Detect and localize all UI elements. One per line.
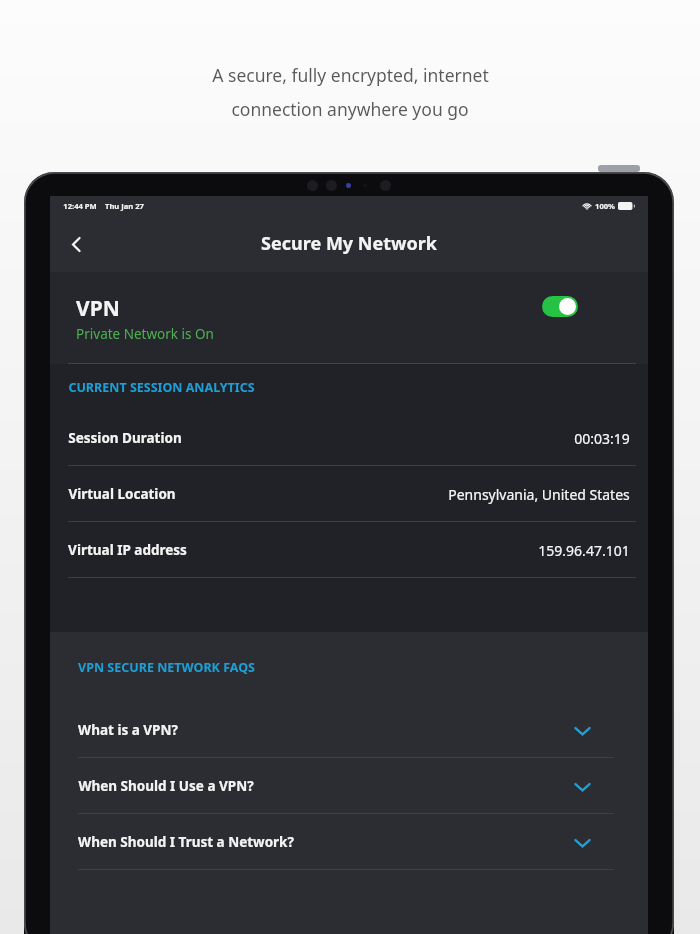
button[interactable]: What is a VPN? [50,702,648,758]
button[interactable]: When Should I Trust a Network? [50,814,648,870]
staticText: VPN SECURE NETWORK FAQS [78,659,255,676]
button[interactable]: Back [55,223,97,265]
staticText: CURRENT SESSION ANALYTICS [68,379,255,396]
button[interactable]: When Should I Use a VPN? [50,758,648,814]
button[interactable]: Session Duration [50,410,648,466]
staticText: 100% [595,201,615,211]
staticText: 159.96.47.101 [538,541,630,560]
staticText: Secure My Network [261,231,437,256]
staticText: Pennsylvania, United States [448,485,630,504]
staticText: What is a VPN? [78,721,178,739]
staticText: When Should I Trust a Network? [78,833,294,851]
button[interactable]: VPN on [542,296,578,317]
staticText: Virtual IP address [68,541,187,559]
button[interactable]: Virtual Location [50,466,648,522]
staticText: Virtual Location [68,485,176,503]
staticText: 12:44 PM [63,201,97,211]
staticText: Private Network is On [76,325,214,343]
staticText: When Should I Use a VPN? [78,777,254,795]
staticText: Session Duration [68,429,182,447]
staticText: 00:03:19 [574,429,630,448]
staticText: Thu Jan 27 [105,201,144,211]
staticText: A secure, fully encrypted, internet [212,63,489,87]
staticText: VPN [76,294,120,323]
staticText: connection anywhere you go [231,97,469,121]
button[interactable]: Virtual IP address [50,522,648,578]
